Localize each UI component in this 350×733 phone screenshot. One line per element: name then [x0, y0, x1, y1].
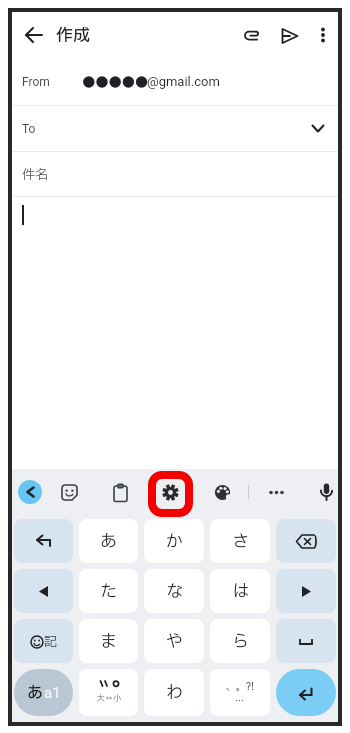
staticText: ら [232, 629, 249, 654]
staticText: や [166, 629, 183, 654]
button[interactable]: な [144, 569, 204, 613]
staticText: は [232, 579, 249, 604]
button[interactable]: ま [79, 619, 138, 663]
staticText: ま [100, 629, 117, 654]
button[interactable] [276, 569, 336, 613]
button[interactable]: 、。?! [210, 669, 270, 716]
button[interactable] [53, 476, 85, 508]
button[interactable]: は [210, 569, 270, 613]
button[interactable] [276, 519, 336, 563]
button[interactable] [18, 480, 42, 504]
button[interactable] [260, 476, 292, 508]
staticText: か [166, 529, 183, 554]
button[interactable]: To [12, 106, 338, 151]
button[interactable]: ら [210, 619, 270, 663]
staticText: a1 [44, 684, 61, 702]
button[interactable]: わ [144, 669, 204, 716]
button[interactable] [12, 13, 56, 57]
button[interactable]: や [144, 619, 204, 663]
button[interactable] [310, 476, 342, 508]
staticText: な [166, 579, 183, 604]
staticText: さ [232, 529, 249, 554]
button[interactable]: た [79, 569, 138, 613]
button[interactable] [104, 476, 136, 508]
button[interactable]: 件名 [12, 152, 338, 196]
staticText: 大⇔小 [97, 693, 121, 705]
staticText: … [235, 694, 245, 707]
button[interactable] [206, 476, 238, 508]
button[interactable]: あ [79, 519, 138, 563]
button[interactable] [14, 569, 73, 613]
staticText: 記 [44, 632, 58, 651]
button[interactable]: あ [14, 669, 73, 716]
staticText: 件名 [22, 165, 49, 184]
button[interactable] [276, 619, 336, 663]
button[interactable]: From [12, 58, 338, 105]
button[interactable] [154, 476, 186, 508]
button[interactable]: 大⇔小 [79, 669, 138, 716]
button[interactable] [276, 669, 336, 716]
staticText: た [100, 579, 117, 604]
staticText: あ [100, 529, 117, 554]
button[interactable] [271, 17, 308, 54]
button[interactable] [233, 16, 271, 54]
button[interactable]: 記 [14, 619, 73, 663]
staticText: From [22, 75, 50, 89]
button[interactable]: か [144, 519, 204, 563]
staticText: 作成 [56, 23, 90, 48]
staticText: わ [166, 680, 183, 705]
staticText: あ [27, 681, 44, 705]
button[interactable] [14, 519, 73, 563]
staticText: To [22, 122, 36, 136]
button[interactable]: さ [210, 519, 270, 563]
staticText: @gmail.com [147, 74, 220, 89]
button[interactable] [308, 20, 338, 50]
staticText: 、。?! [226, 679, 254, 694]
